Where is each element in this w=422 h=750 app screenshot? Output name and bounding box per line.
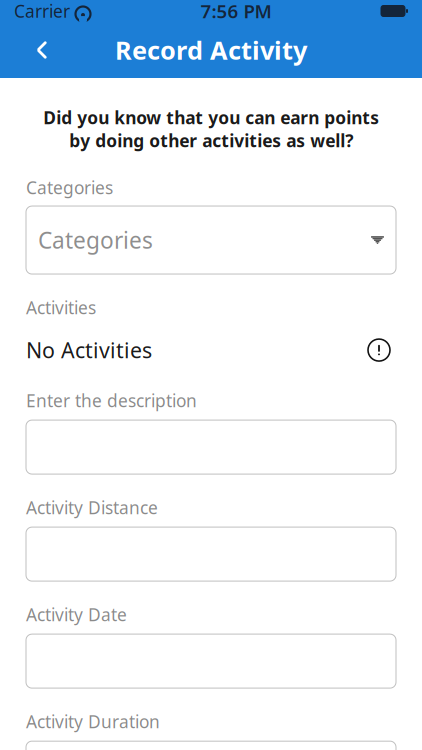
staticText: Enter the description: [26, 389, 197, 412]
staticText: Record Activity: [115, 33, 307, 67]
button[interactable]: Categories: [26, 206, 396, 274]
staticText: No Activities: [26, 336, 152, 364]
staticText: Activities: [26, 296, 96, 319]
button[interactable]: Activities information: [362, 333, 396, 367]
staticText: Activity Duration: [26, 710, 160, 733]
staticText: Carrier: [14, 0, 70, 22]
staticText: Activity Distance: [26, 496, 158, 519]
button[interactable]: Activity Distance: [26, 527, 396, 581]
staticText: Categories: [26, 176, 113, 199]
staticText: Activity Date: [26, 603, 127, 626]
button[interactable]: Back: [20, 28, 64, 72]
staticText: Categories: [38, 225, 153, 255]
button[interactable]: Activity Date: [26, 634, 396, 688]
button[interactable]: Enter the description: [26, 420, 396, 474]
staticText: Did you know that you can earn points by…: [43, 106, 379, 152]
button[interactable]: Activity Duration: [26, 741, 396, 750]
staticText: 7:56 PM: [200, 0, 271, 23]
